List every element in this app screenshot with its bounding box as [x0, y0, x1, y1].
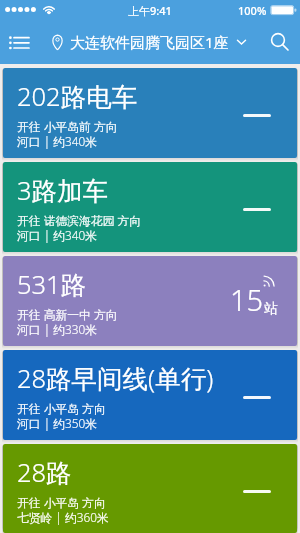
button[interactable]: Search [263, 25, 297, 59]
staticText: 3路加车 [17, 173, 109, 208]
staticText: 上午9:41 [128, 3, 172, 18]
button[interactable]: 大连软件园腾飞园区1座 [52, 32, 246, 52]
staticText: 28路 [17, 455, 72, 490]
staticText: 河口 | 约330米 [17, 321, 97, 337]
staticText: 531路 [17, 267, 87, 302]
staticText: 15 [230, 280, 264, 319]
staticText: 河口 | 约350米 [17, 415, 97, 431]
staticText: 站 [264, 300, 278, 318]
staticText: 开往 诺德滨海花园 方向 [17, 212, 142, 228]
staticText: 28路早间线(单行) [17, 361, 214, 396]
staticText: 开往 高新一中 方向 [17, 306, 118, 322]
staticText: 100% [238, 3, 267, 18]
button[interactable]: 3路加车 [3, 162, 297, 252]
button[interactable]: 28路 [3, 444, 297, 533]
staticText: 开往 小平岛前 方向 [17, 118, 118, 134]
button[interactable]: 531路 [3, 256, 297, 346]
staticText: 河口 | 约340米 [17, 227, 97, 243]
button[interactable]: Menu [0, 22, 40, 62]
staticText: 开往 小平岛 方向 [17, 494, 106, 510]
button[interactable]: 28路早间线(单行) [3, 350, 297, 440]
staticText: 开往 小平岛 方向 [17, 400, 106, 416]
staticText: 202路电车 [17, 79, 138, 114]
staticText: 七贤岭 | 约360米 [17, 509, 109, 525]
staticText: 大连软件园腾飞园区1座 [70, 32, 229, 52]
staticText: 河口 | 约340米 [17, 133, 97, 149]
button[interactable]: 202路电车 [3, 68, 297, 158]
